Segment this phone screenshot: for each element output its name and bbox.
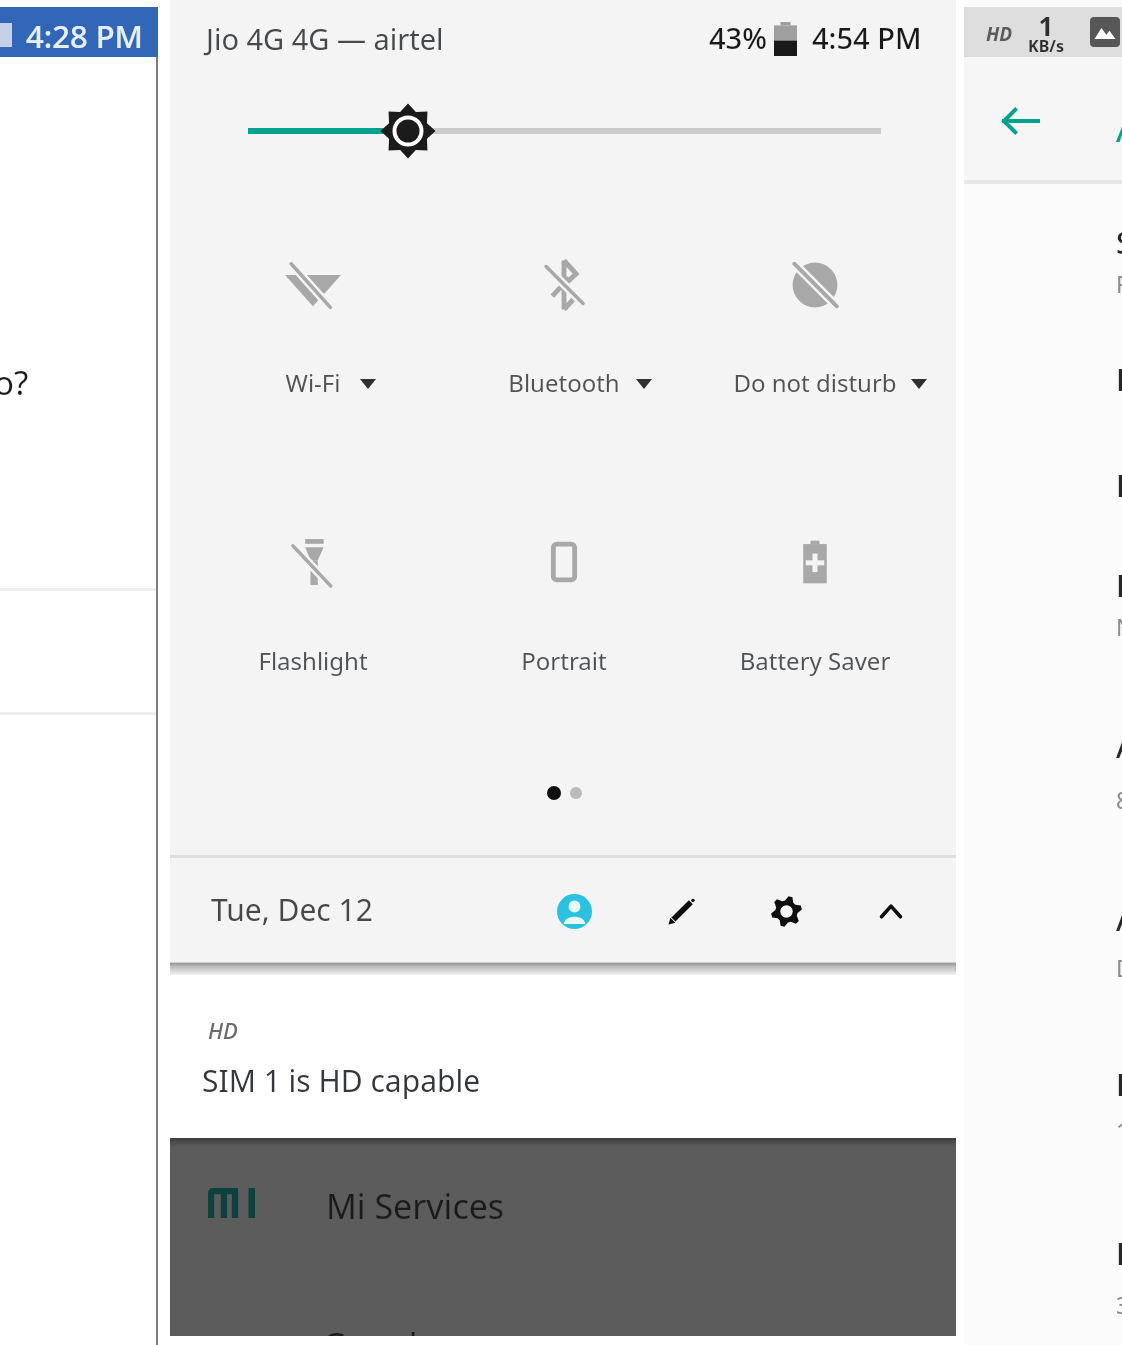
staticText: 8	[1116, 784, 1122, 815]
staticText: 1	[1024, 8, 1068, 43]
staticText: 4:54 PM	[812, 18, 922, 57]
staticText: P	[1116, 268, 1122, 299]
staticText: Mi Services	[326, 1183, 505, 1229]
staticText: P	[1116, 1064, 1122, 1105]
staticText: 4:28 PM	[26, 15, 144, 57]
staticText: KB/s	[1024, 35, 1068, 57]
button[interactable]: Flashlight	[228, 500, 398, 660]
staticText: Jio 4G 4G — airtel	[206, 19, 444, 58]
staticText: A	[1116, 899, 1122, 940]
button[interactable]: Account	[541, 878, 607, 944]
button[interactable]: Bluetooth	[479, 223, 649, 383]
staticText: HD	[208, 1015, 238, 1045]
staticText: Flashlight	[63, 644, 563, 677]
staticText: 3	[1116, 1289, 1122, 1320]
button[interactable]: Do not disturb	[730, 223, 900, 383]
staticText: A	[1116, 101, 1122, 153]
staticText: S	[1116, 222, 1122, 263]
button[interactable]: Edit	[648, 878, 714, 944]
staticText: P	[1116, 1233, 1122, 1274]
staticText: SIM 1 is HD capable	[202, 1060, 481, 1101]
staticText: HD	[986, 21, 1013, 47]
staticText: 1	[1116, 1115, 1122, 1146]
staticText: Portrait	[314, 644, 814, 677]
staticText: o?	[0, 360, 29, 405]
staticText: D	[1116, 952, 1122, 983]
button[interactable]: Settings	[753, 878, 819, 944]
staticText: N	[1116, 611, 1122, 642]
staticText: Tue, Dec 12	[211, 889, 373, 930]
staticText: 43%	[709, 18, 767, 57]
staticText: P	[1116, 465, 1122, 506]
staticText: A	[1116, 726, 1122, 767]
button[interactable]: Back	[998, 99, 1042, 143]
staticText: Wi-Fi	[63, 366, 563, 399]
staticText: Bluetooth	[314, 366, 814, 399]
staticText: Do not disturb	[565, 366, 1065, 399]
button[interactable]: Portrait	[479, 500, 649, 660]
button[interactable]: Wi-Fi	[228, 223, 398, 383]
button[interactable]: Collapse	[858, 878, 924, 944]
button[interactable]: Battery Saver	[730, 500, 900, 660]
staticText: Battery Saver	[565, 644, 1065, 677]
staticText: D	[1116, 359, 1122, 400]
staticText: Google	[322, 1322, 437, 1336]
staticText: D	[1116, 565, 1122, 606]
